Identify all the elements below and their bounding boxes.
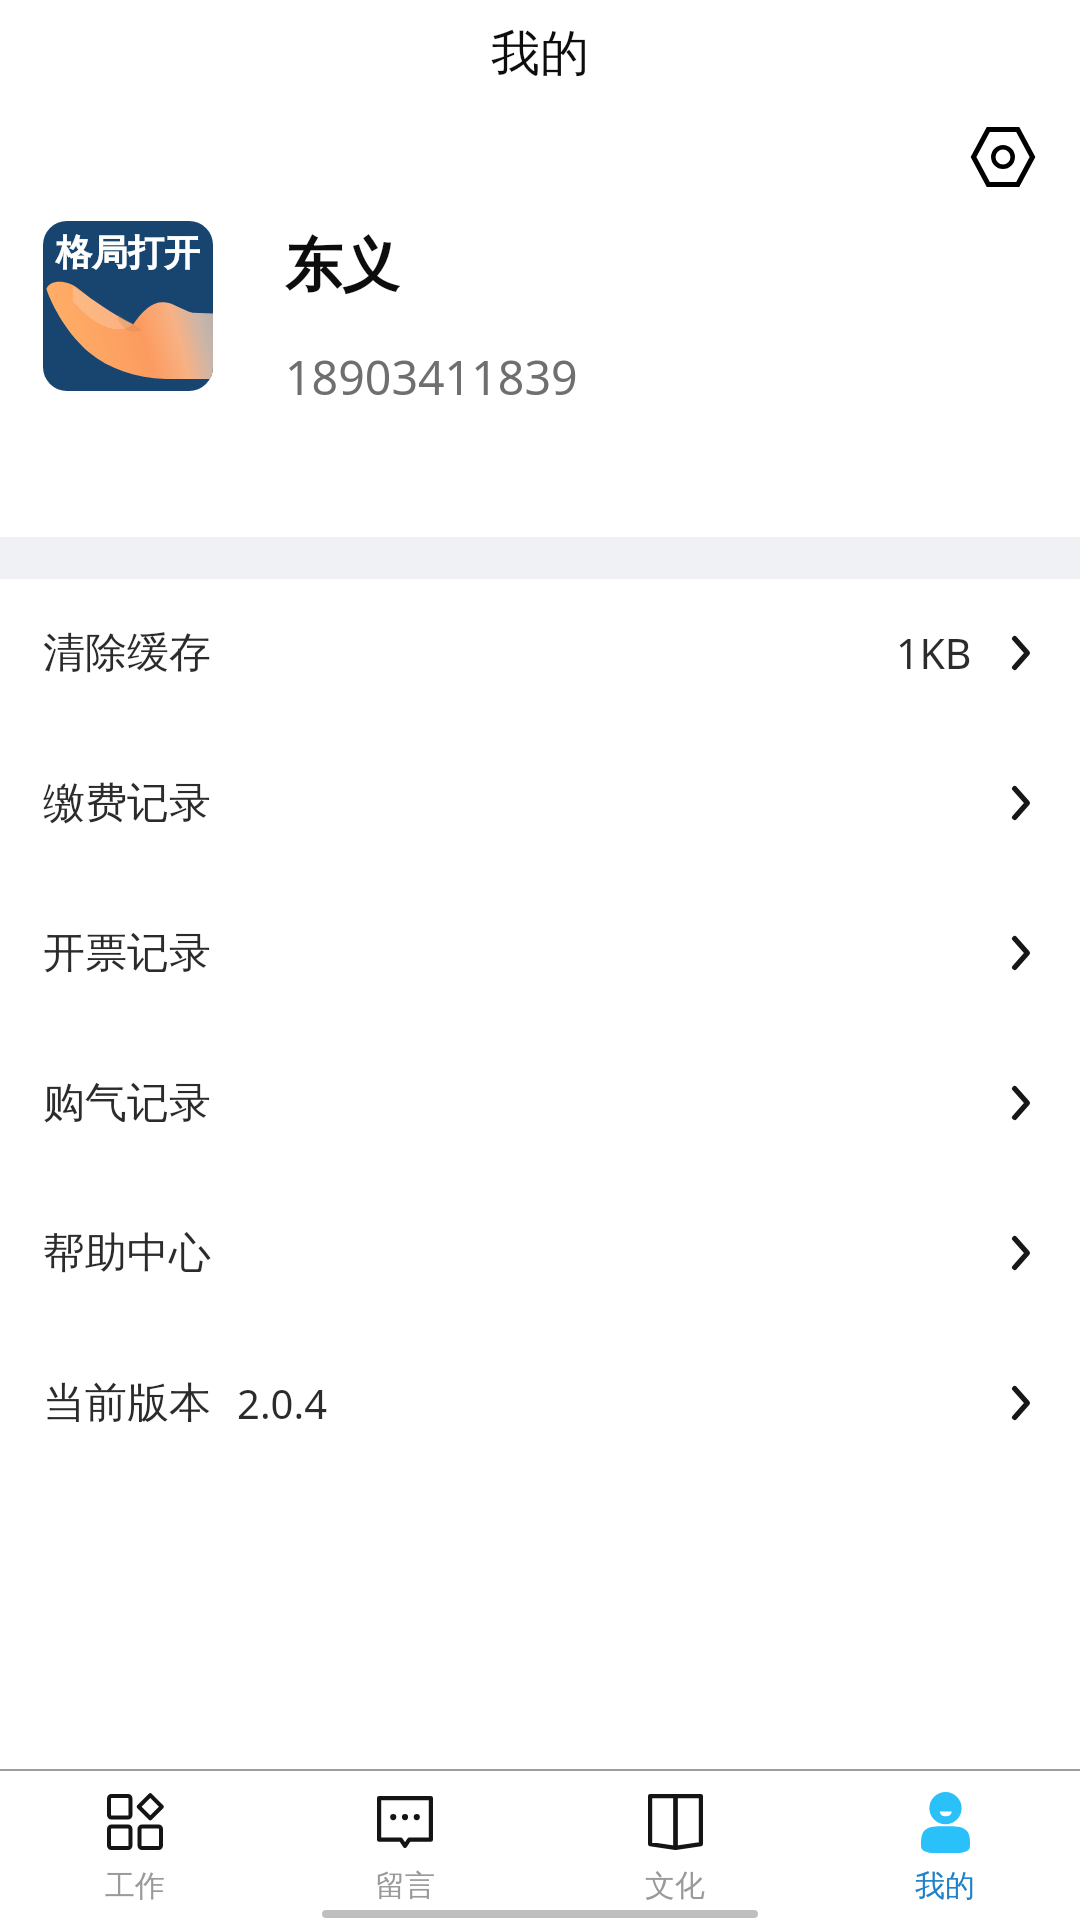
staticText: 购气记录	[43, 1077, 211, 1130]
staticText: 我的	[491, 23, 589, 85]
button[interactable]: 我的	[810, 1770, 1080, 1920]
button[interactable]: 格局打开	[0, 190, 1080, 420]
staticText: 缴费记录	[43, 777, 211, 830]
button[interactable]: Settings	[963, 118, 1042, 196]
staticText: 东义	[285, 230, 399, 302]
staticText: 留言	[375, 1867, 435, 1905]
button[interactable]: 开票记录	[0, 878, 1080, 1028]
staticText: 工作	[105, 1867, 165, 1905]
staticText: 清除缓存	[43, 627, 211, 680]
staticText: 开票记录	[43, 927, 211, 980]
button[interactable]: 留言	[270, 1770, 540, 1920]
staticText: 2.0.4	[237, 1376, 328, 1430]
button[interactable]: 缴费记录	[0, 728, 1080, 878]
staticText: 帮助中心	[43, 1227, 211, 1280]
staticText: 当前版本	[43, 1377, 211, 1430]
button[interactable]: 帮助中心	[0, 1178, 1080, 1328]
button[interactable]: 工作	[0, 1770, 270, 1920]
staticText: 1KB	[896, 625, 972, 681]
staticText: 18903411839	[285, 345, 578, 408]
staticText: 文化	[645, 1867, 705, 1905]
button[interactable]: 文化	[540, 1770, 810, 1920]
staticText: 我的	[915, 1867, 975, 1905]
button[interactable]: 当前版本	[0, 1328, 1080, 1478]
button[interactable]: 购气记录	[0, 1028, 1080, 1178]
button[interactable]: 清除缓存	[0, 578, 1080, 728]
staticText: 格局打开	[56, 230, 200, 275]
